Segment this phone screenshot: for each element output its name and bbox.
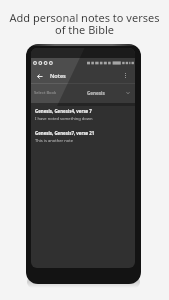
- button[interactable]: Back: [34, 70, 46, 82]
- staticText: I have noted something down: [35, 116, 93, 122]
- staticText: Notes: [50, 72, 66, 80]
- staticText: Add personal notes to verses of the Bibl…: [8, 10, 161, 37]
- staticText: Genesis: [87, 90, 105, 96]
- button[interactable]: Genesis, Genesis4, verse 7: [31, 103, 135, 125]
- staticText: This is another note: [35, 138, 74, 144]
- staticText: Select Book: [34, 90, 57, 96]
- button[interactable]: Select Book: [31, 83, 135, 103]
- button[interactable]: More options: [120, 70, 131, 81]
- staticText: Genesis, Genesis7, verse 21: [35, 130, 95, 136]
- button[interactable]: Genesis, Genesis7, verse 21: [31, 125, 135, 147]
- staticText: Genesis, Genesis4, verse 7: [35, 108, 92, 114]
